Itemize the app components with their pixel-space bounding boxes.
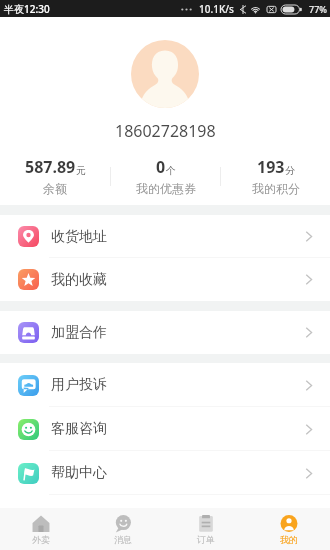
staticText: 半夜12:30 bbox=[4, 2, 50, 16]
staticText: 订单 bbox=[197, 534, 215, 545]
staticText: 18602728198 bbox=[115, 120, 216, 142]
staticText: 个 bbox=[166, 164, 176, 177]
button[interactable]: 客服咨询 bbox=[0, 407, 330, 451]
button[interactable]: 消息 bbox=[82, 508, 164, 550]
staticText: 0 bbox=[156, 156, 166, 178]
button[interactable]: 外卖 bbox=[0, 508, 82, 550]
staticText: 我的积分 bbox=[252, 181, 300, 196]
staticText: 加盟合作 bbox=[51, 324, 107, 342]
staticText: 元 bbox=[76, 164, 86, 177]
button[interactable]: 0 bbox=[111, 142, 220, 196]
button[interactable]: 587.89 bbox=[0, 142, 110, 196]
button[interactable]: 订单 bbox=[164, 508, 247, 550]
button[interactable]: 我的收藏 bbox=[0, 258, 330, 301]
button[interactable]: 用户投诉 bbox=[0, 363, 330, 407]
staticText: 收货地址 bbox=[51, 228, 107, 246]
staticText: 外卖 bbox=[32, 534, 50, 545]
staticText: 193 bbox=[257, 156, 285, 178]
staticText: 帮助中心 bbox=[51, 464, 107, 482]
staticText: 10.1K/s bbox=[199, 2, 234, 16]
button[interactable]: 加盟合作 bbox=[0, 311, 330, 354]
staticText: 77% bbox=[309, 3, 327, 15]
staticText: 消息 bbox=[114, 534, 132, 545]
staticText: 用户投诉 bbox=[51, 376, 107, 394]
staticText: 客服咨询 bbox=[51, 420, 107, 438]
button[interactable]: 收货地址 bbox=[0, 215, 330, 258]
staticText: 我的优惠券 bbox=[136, 181, 196, 196]
button[interactable]: 193 bbox=[221, 142, 330, 196]
staticText: 我的 bbox=[280, 534, 298, 545]
button[interactable]: 我的 bbox=[247, 508, 330, 550]
staticText: 余额 bbox=[43, 181, 67, 196]
staticText: 587.89 bbox=[25, 156, 76, 178]
button[interactable]: 帮助中心 bbox=[0, 451, 330, 495]
staticText: 分 bbox=[285, 164, 295, 177]
staticText: 我的收藏 bbox=[51, 271, 107, 289]
